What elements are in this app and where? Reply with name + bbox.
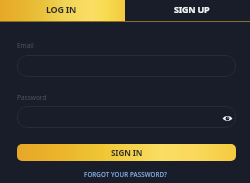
staticText: SIGN UP: [174, 3, 210, 15]
button[interactable]: [17, 55, 236, 77]
staticText: Password: [17, 93, 47, 102]
button[interactable]: LOG IN: [0, 0, 125, 21]
staticText: Email: [17, 41, 34, 50]
button[interactable]: FORGOT YOUR PASSWORD?: [84, 170, 167, 178]
staticText: SIGN IN: [111, 147, 143, 158]
button[interactable]: SIGN UP: [125, 0, 250, 21]
button[interactable]: Show password: [17, 106, 236, 128]
staticText: LOG IN: [46, 3, 77, 15]
button[interactable]: Show password: [219, 110, 235, 126]
button[interactable]: SIGN IN: [17, 144, 236, 161]
